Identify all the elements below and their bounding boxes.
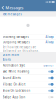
staticText: Show On Lock Screen xyxy=(3,89,31,92)
staticText: Alerts xyxy=(3,58,11,62)
staticText: Messages xyxy=(5,5,23,10)
staticText: Always xyxy=(45,40,53,44)
staticText: Learn more xyxy=(3,53,20,57)
staticText: Set how text messages are xyxy=(3,46,37,49)
staticText: Notification Style xyxy=(3,64,26,67)
button[interactable]: Learn more xyxy=(3,53,56,57)
staticText: Banner xyxy=(43,64,53,67)
staticText: Always xyxy=(45,35,53,39)
button[interactable]: Notification Style xyxy=(0,63,56,68)
staticText: Outgoing Messages xyxy=(3,40,30,44)
button[interactable]: Back xyxy=(0,4,5,11)
staticText: Vibrate On Alert xyxy=(3,83,26,86)
staticText: Badge App Icon xyxy=(3,95,26,99)
staticText: Sound Alerts xyxy=(3,76,21,80)
staticText: Incoming Messages xyxy=(3,35,29,39)
staticText: delivered on this phone. xyxy=(3,49,40,53)
button[interactable]: Sound Alerts xyxy=(0,75,56,81)
button[interactable]: Badge App Icon xyxy=(0,94,56,100)
staticText: Text messages xyxy=(3,12,22,16)
button[interactable]: Save While Roaming xyxy=(0,68,56,75)
button[interactable]: Outgoing Messages xyxy=(0,40,56,45)
button[interactable]: Incoming Messages xyxy=(0,34,56,39)
button[interactable]: Show On Lock Screen xyxy=(0,88,56,94)
button[interactable]: Vibrate On Alert xyxy=(0,81,56,87)
staticText: Save While Roaming xyxy=(3,70,30,73)
